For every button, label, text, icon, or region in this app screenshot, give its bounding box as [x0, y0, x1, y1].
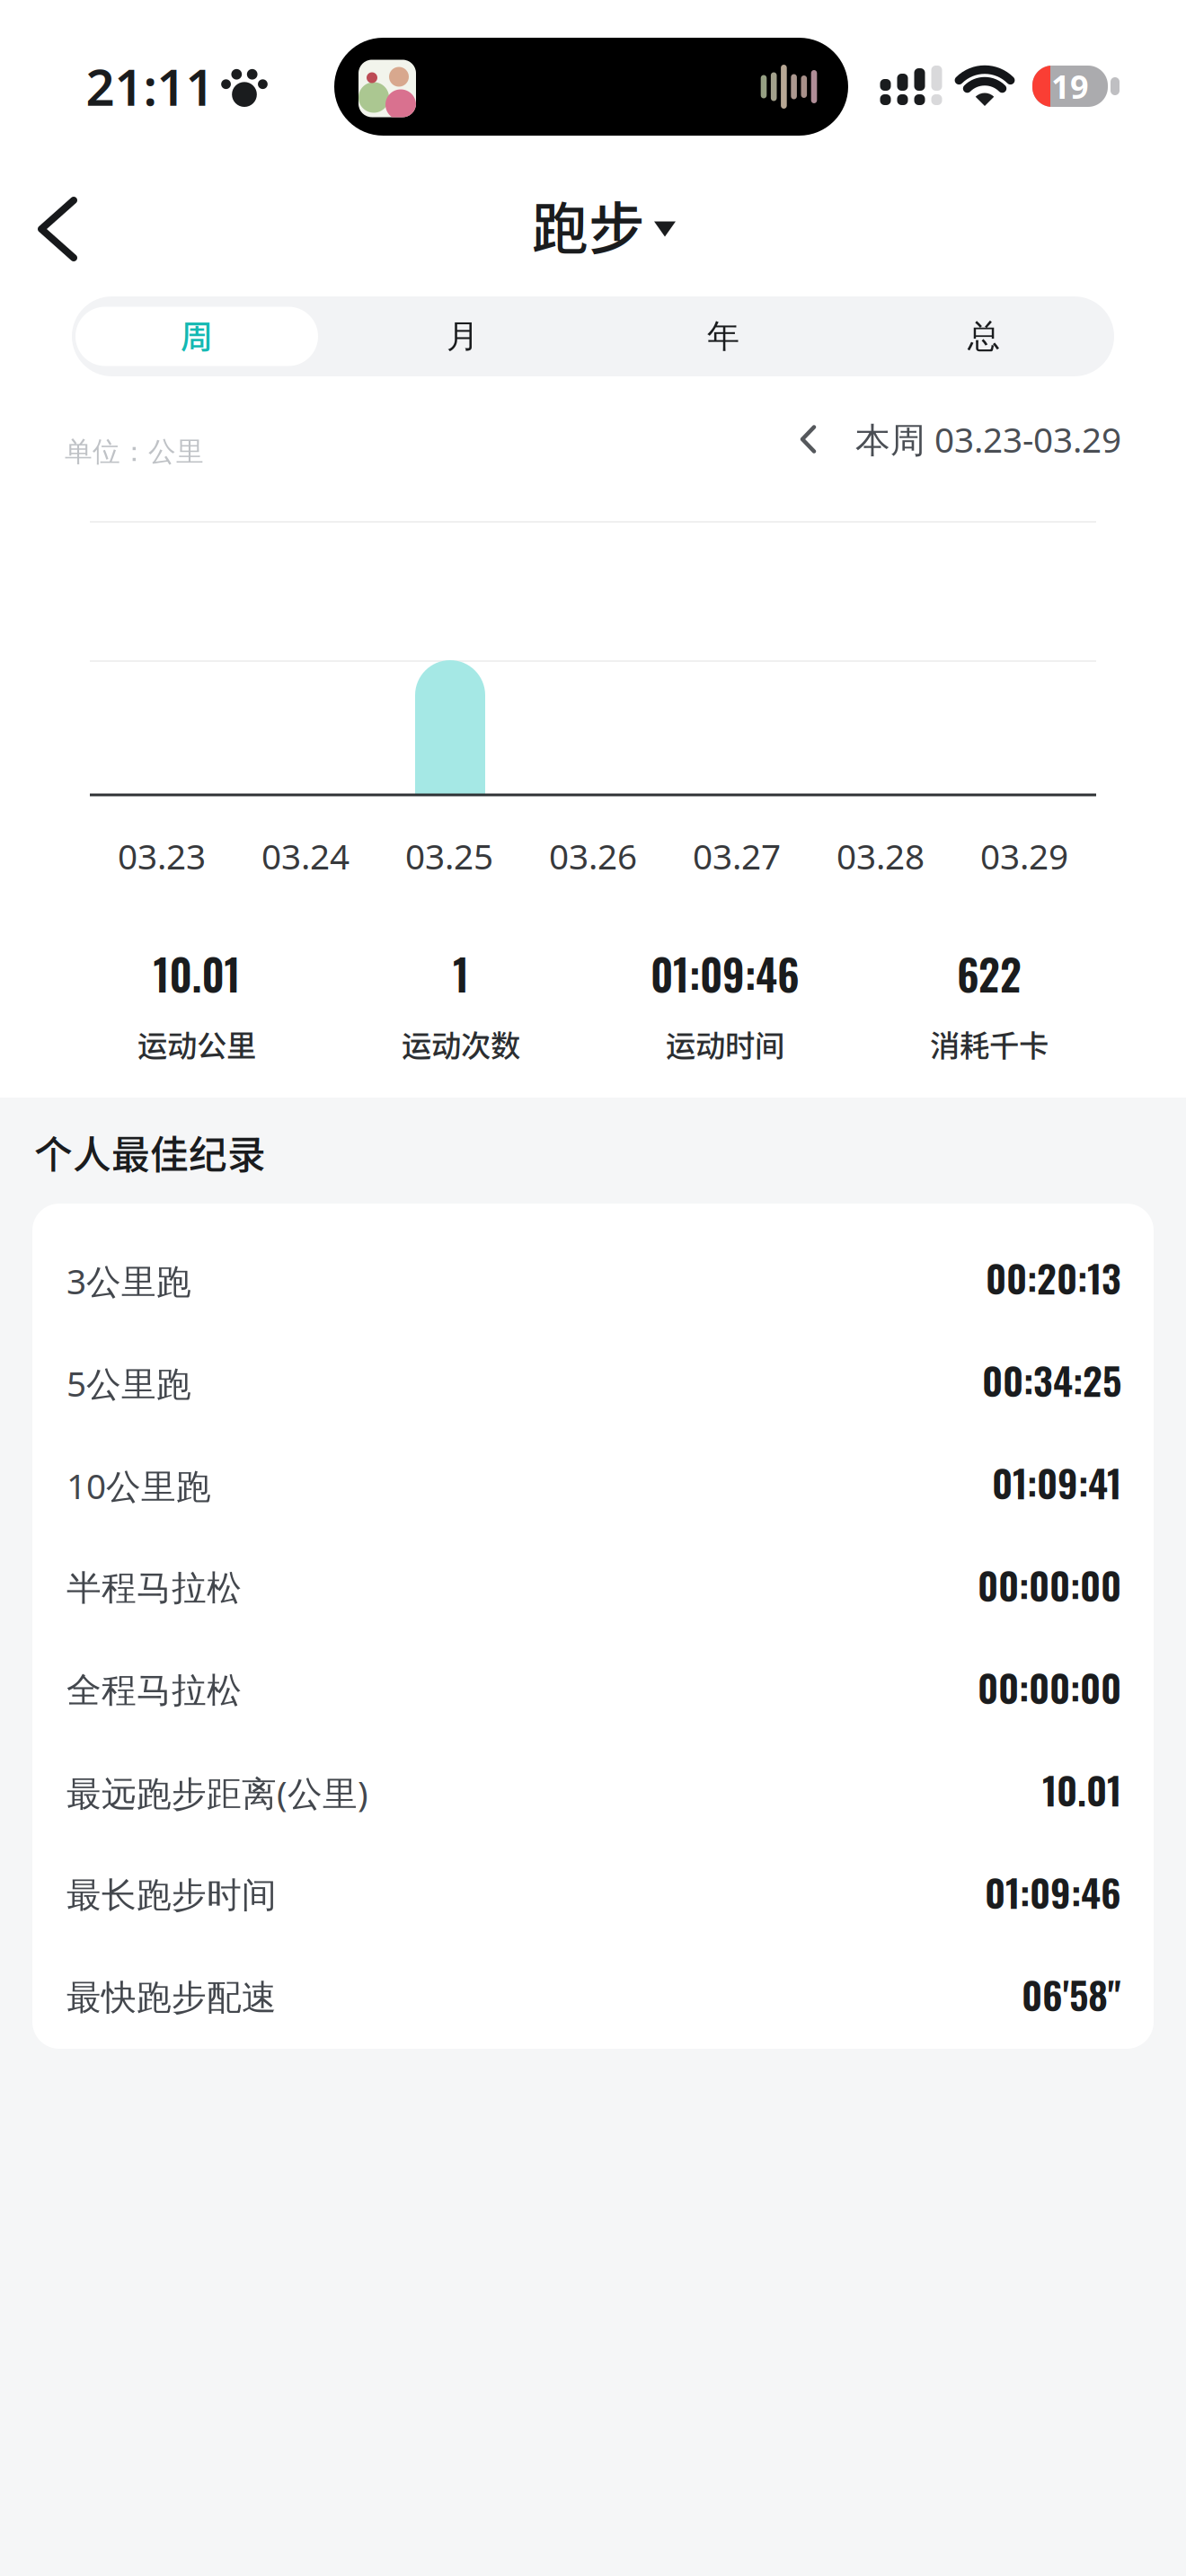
- staticText: 5公里跑: [66, 1360, 191, 1406]
- staticText: 10.01: [153, 943, 240, 1005]
- button[interactable]: 跑步: [532, 184, 676, 265]
- staticText: 周: [181, 311, 213, 358]
- staticText: 03.27: [693, 833, 781, 879]
- staticText: 个人最佳纪录: [34, 1125, 266, 1180]
- staticText: 运动时间: [666, 1022, 784, 1065]
- staticText: 00:20:13: [986, 1249, 1121, 1306]
- staticText: 21:11: [86, 53, 214, 120]
- staticText: 单位：公里: [65, 435, 204, 469]
- button[interactable]: 月: [332, 296, 593, 376]
- staticText: 10.01: [1042, 1761, 1121, 1818]
- button[interactable]: 上一周: [802, 416, 1121, 462]
- staticText: 01:09:46: [651, 943, 800, 1005]
- staticText: 运动次数: [402, 1022, 520, 1065]
- staticText: 最长跑步时间: [66, 1874, 277, 1917]
- staticText: 03.26: [549, 833, 637, 879]
- staticText: 03.29: [980, 833, 1068, 879]
- staticText: 消耗千卡: [930, 1022, 1049, 1065]
- staticText: 最快跑步配速: [66, 1976, 277, 2019]
- staticText: 622: [957, 943, 1022, 1005]
- staticText: 总: [968, 317, 1000, 356]
- staticText: 00:00:00: [978, 1658, 1121, 1715]
- staticText: 19: [1051, 65, 1089, 108]
- staticText: 半程马拉松: [66, 1567, 242, 1609]
- staticText: 最远跑步距离(公里): [66, 1770, 368, 1816]
- button[interactable]: 周: [75, 307, 318, 366]
- staticText: 1: [453, 943, 469, 1005]
- staticText: 03.24: [261, 833, 350, 879]
- staticText: 01:09:46: [985, 1863, 1121, 1920]
- staticText: 10公里跑: [66, 1463, 211, 1509]
- button[interactable]: 总: [854, 296, 1114, 376]
- staticText: 3公里跑: [66, 1258, 191, 1304]
- button[interactable]: 年: [593, 296, 854, 376]
- staticText: 00:34:25: [982, 1351, 1121, 1408]
- staticText: 03.28: [836, 833, 925, 879]
- staticText: 03.25: [405, 833, 493, 879]
- staticText: 跑步: [532, 184, 645, 265]
- staticText: 06'58": [1022, 1966, 1121, 2022]
- staticText: 全程马拉松: [66, 1669, 242, 1712]
- staticText: 年: [707, 317, 739, 356]
- staticText: 月: [447, 317, 479, 356]
- button[interactable]: Back: [23, 186, 92, 272]
- staticText: 00:00:00: [978, 1556, 1121, 1613]
- staticText: 运动公里: [137, 1022, 256, 1065]
- staticText: 本周 03.23-03.29: [855, 416, 1121, 462]
- staticText: 01:09:41: [992, 1454, 1121, 1510]
- staticText: 03.23: [118, 833, 206, 879]
